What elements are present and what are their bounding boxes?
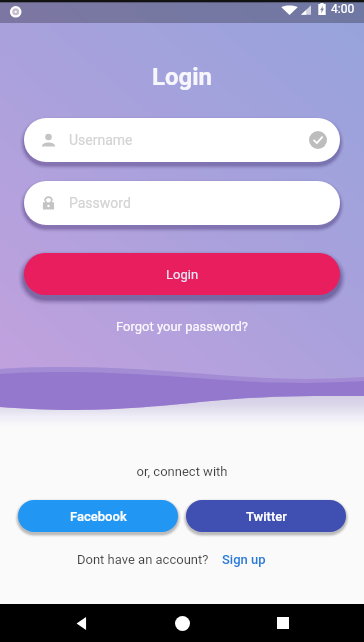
button[interactable]: Twitter	[186, 500, 346, 532]
staticText: or, connect with	[0, 464, 364, 479]
button[interactable]: Forgot your password?	[0, 319, 364, 334]
staticText: 4:00	[331, 2, 355, 16]
staticText: Twitter	[246, 509, 287, 524]
button[interactable]: Login	[24, 253, 340, 295]
staticText: Facebook	[70, 509, 127, 524]
button[interactable]: Home	[162, 604, 202, 642]
staticText: Username	[69, 132, 133, 148]
button[interactable]: Password	[24, 181, 340, 225]
button[interactable]: Facebook	[18, 500, 178, 532]
button[interactable]: Recent apps	[263, 604, 303, 642]
button[interactable]: Username	[24, 118, 340, 162]
staticText: Dont have an account?	[77, 552, 209, 567]
button[interactable]: Sign up	[222, 552, 266, 567]
staticText: Login	[166, 267, 199, 282]
button[interactable]: Back	[61, 604, 101, 642]
staticText: Password	[69, 195, 131, 211]
staticText: Login	[0, 63, 364, 91]
